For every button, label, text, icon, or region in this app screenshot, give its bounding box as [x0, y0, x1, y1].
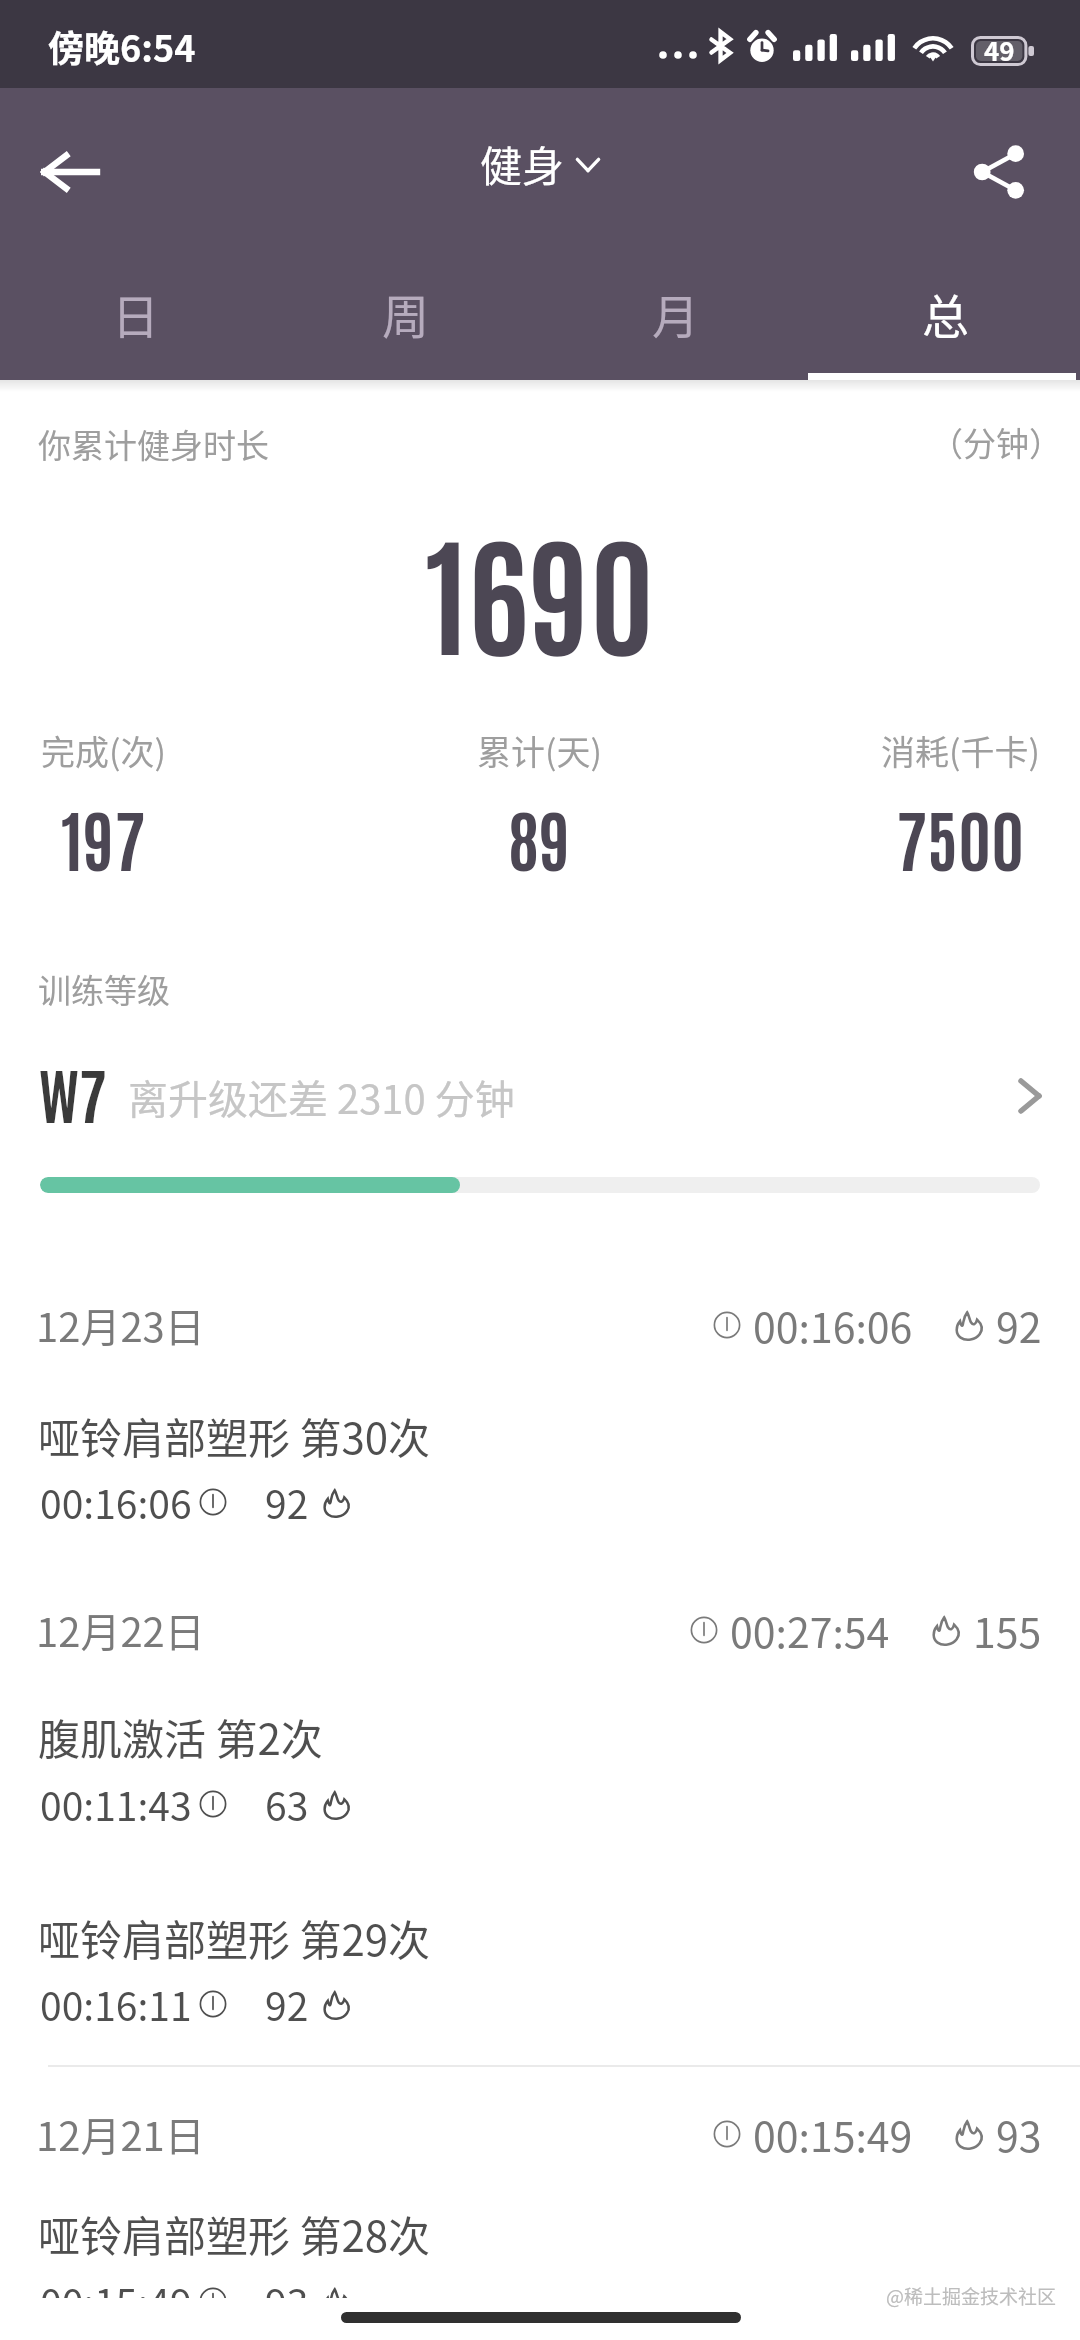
staticText: 12月22日	[36, 1601, 205, 1659]
staticText: 197	[61, 794, 146, 881]
staticText: 1690	[425, 504, 655, 674]
staticText: @稀土掘金技术社区	[886, 2282, 1056, 2310]
staticText: 周	[382, 279, 429, 347]
button[interactable]: 腹肌激活 第2次	[0, 1706, 1080, 1826]
staticText: 92	[996, 1295, 1042, 1354]
staticText: 63	[265, 1776, 309, 1832]
staticText: 155	[973, 1600, 1042, 1659]
button[interactable]: 周	[270, 265, 540, 361]
staticText: W7	[39, 1054, 107, 1132]
button[interactable]: 总	[810, 265, 1080, 361]
staticText: 12月23日	[36, 1296, 205, 1354]
button[interactable]: W7	[0, 1038, 1080, 1148]
staticText: 哑铃肩部塑形 第28次	[38, 2203, 431, 2264]
staticText: 你累计健身时长	[38, 420, 269, 468]
button[interactable]: Share	[945, 117, 1055, 227]
staticText: 92	[265, 1976, 309, 2032]
staticText: 92	[265, 1474, 309, 1530]
staticText: 消耗(千卡)	[881, 726, 1040, 775]
button[interactable]: 日	[0, 265, 270, 361]
staticText: 傍晚6:54	[48, 20, 196, 72]
button[interactable]: 哑铃肩部塑形 第28次	[0, 2203, 1080, 2323]
staticText: 00:11:43	[40, 1776, 192, 1832]
staticText: 完成(次)	[41, 726, 166, 775]
staticText: 累计(天)	[477, 726, 602, 775]
staticText: 93	[265, 2273, 309, 2329]
staticText: 89	[508, 794, 571, 881]
staticText: （分钟）	[930, 418, 1062, 466]
button[interactable]: 健身	[0, 120, 1080, 206]
staticText: 总	[922, 279, 969, 347]
staticText: 哑铃肩部塑形 第30次	[38, 1405, 431, 1466]
staticText: 健身	[480, 133, 565, 194]
staticText: 00:15:49	[753, 2104, 913, 2163]
staticText: 月	[652, 279, 699, 347]
button[interactable]: Back	[14, 117, 124, 227]
staticText: 训练等级	[38, 965, 170, 1013]
staticText: 49	[984, 31, 1015, 69]
staticText: 哑铃肩部塑形 第29次	[38, 1907, 431, 1968]
staticText: 00:16:06	[40, 1474, 192, 1530]
staticText: 00:15:49	[40, 2273, 192, 2329]
staticText: 离升级还差 2310 分钟	[128, 1068, 515, 1126]
staticText: 日	[112, 279, 159, 347]
button[interactable]: 月	[540, 265, 810, 361]
staticText: 00:16:11	[40, 1976, 192, 2032]
staticText: 7500	[896, 794, 1025, 881]
staticText: 00:27:54	[730, 1600, 890, 1659]
staticText: 00:16:06	[753, 1295, 913, 1354]
staticText: 腹肌激活 第2次	[38, 1706, 323, 1767]
staticText: 93	[996, 2104, 1042, 2163]
button[interactable]: 哑铃肩部塑形 第30次	[0, 1405, 1080, 1524]
button[interactable]: 哑铃肩部塑形 第29次	[0, 1907, 1080, 2026]
staticText: 12月21日	[36, 2105, 205, 2163]
